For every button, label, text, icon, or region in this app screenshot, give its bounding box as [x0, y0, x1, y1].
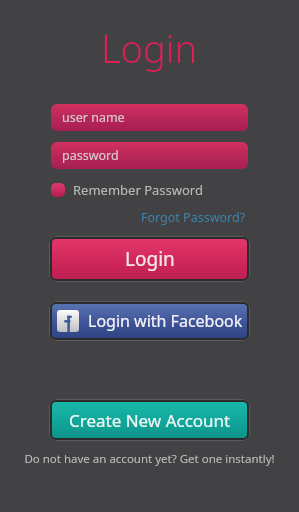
button[interactable]: user name: [51, 104, 248, 131]
staticText: Login: [125, 246, 175, 272]
staticText: Create New Account: [69, 409, 231, 432]
button[interactable]: Do not have an account yet? Get one inst…: [0, 451, 299, 467]
button[interactable]: password: [51, 142, 248, 169]
staticText: Remember Password: [73, 181, 203, 199]
button[interactable]: Forgot Password?: [139, 207, 248, 228]
button[interactable]: Login with Facebook: [52, 304, 247, 338]
button[interactable]: Remember Password: [51, 181, 248, 199]
staticText: Login: [101, 22, 198, 74]
button[interactable]: Create New Account: [52, 402, 247, 438]
button[interactable]: Login: [52, 239, 247, 279]
staticText: password: [62, 147, 119, 164]
staticText: Forgot Password?: [141, 209, 246, 226]
staticText: Login with Facebook: [88, 310, 243, 332]
staticText: user name: [62, 109, 125, 126]
